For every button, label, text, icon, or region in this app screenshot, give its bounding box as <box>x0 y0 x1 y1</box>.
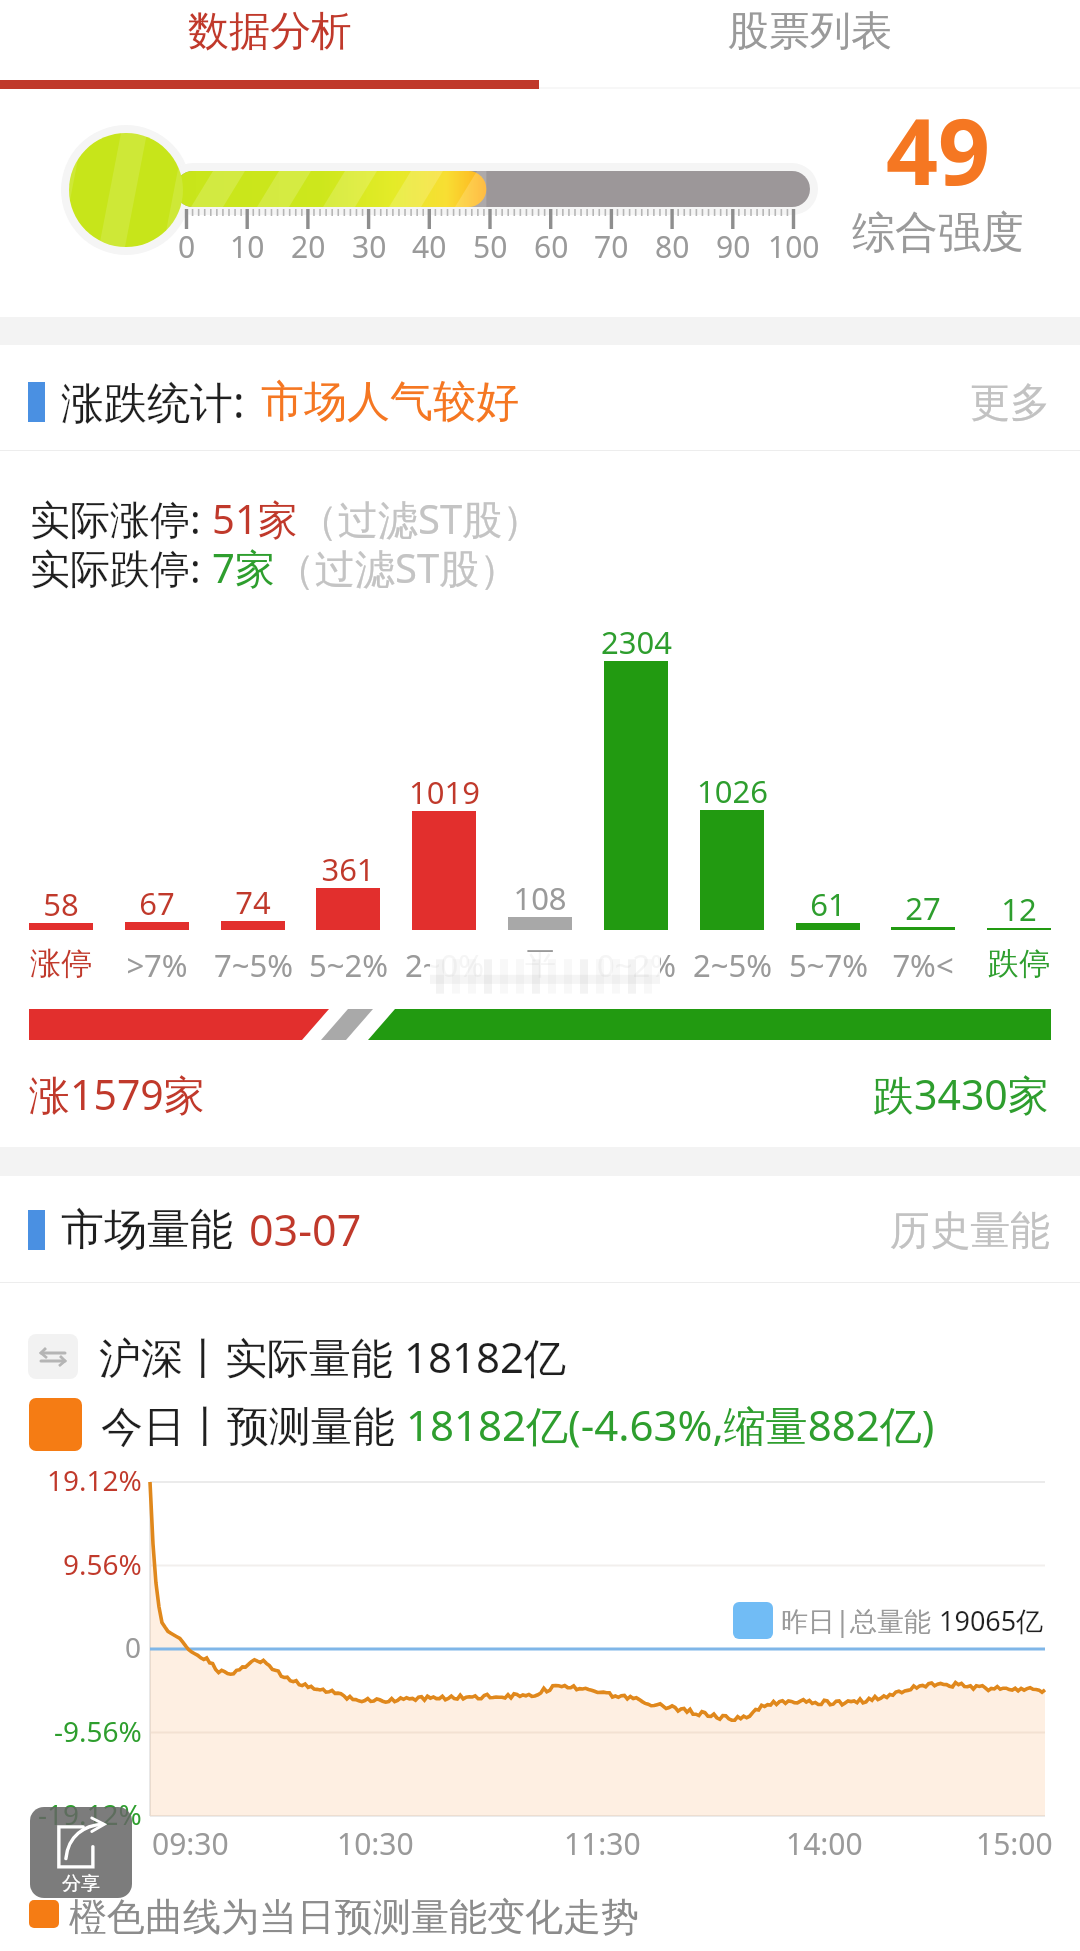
staticText: （过滤ST股） <box>275 540 520 595</box>
staticText: 61 <box>810 883 846 925</box>
staticText: 90 <box>716 226 751 267</box>
staticText: 分享 <box>62 1872 100 1896</box>
staticText: 1019 <box>409 771 480 813</box>
staticText: 50 <box>473 226 508 267</box>
staticText: 涨停 <box>30 944 92 983</box>
staticText: 7~5% <box>214 944 293 986</box>
staticText: 361 <box>321 848 375 890</box>
staticText: 平 <box>525 944 556 983</box>
staticText: 市场人气较好 <box>261 375 519 429</box>
staticText: 14:00 <box>786 1823 863 1864</box>
button[interactable]: 涨跌统计: <box>0 349 1080 454</box>
staticText: 70 <box>594 226 629 267</box>
staticText: 更多 <box>970 377 1050 427</box>
staticText: 1026 <box>697 770 768 812</box>
staticText: 108 <box>513 877 567 919</box>
staticText: 10 <box>230 226 265 267</box>
staticText: 60 <box>534 226 569 267</box>
staticText: 67 <box>139 882 175 924</box>
staticText: 74 <box>235 881 271 923</box>
staticText: 80 <box>655 226 690 267</box>
staticText: 18182亿(-4.63%,缩量882亿) <box>406 1396 935 1453</box>
staticText: 今日丨预测量能 <box>101 1396 406 1453</box>
staticText: 0~2% <box>597 944 676 986</box>
staticText: 跌3430家 <box>873 1066 1049 1122</box>
staticText: 40 <box>412 226 447 267</box>
staticText: 跌停 <box>988 944 1050 983</box>
staticText: 2~0% <box>405 944 484 986</box>
staticText: 5~2% <box>309 944 388 986</box>
staticText: 9.56% <box>63 1545 142 1583</box>
staticText: 58 <box>43 883 79 925</box>
button[interactable]: 数据分析 <box>0 0 540 81</box>
staticText: 7%< <box>892 944 954 986</box>
staticText: -19.12% <box>38 1795 142 1833</box>
staticText: 股票列表 <box>728 6 892 58</box>
staticText: 0 <box>125 1628 142 1666</box>
staticText: 2304 <box>601 621 672 663</box>
staticText: 涨1579家 <box>29 1066 205 1122</box>
staticText: 30 <box>352 226 387 267</box>
staticText: 12 <box>1001 888 1037 930</box>
staticText: 涨跌统计: <box>61 372 245 431</box>
button[interactable]: 股票列表 <box>540 0 1080 81</box>
staticText: 19.12% <box>47 1461 142 1499</box>
staticText: 昨日|总量能 <box>781 1602 931 1639</box>
staticText: 51家 <box>212 491 298 546</box>
staticText: 100 <box>768 226 820 267</box>
button[interactable]: 市场量能 <box>0 1177 1080 1282</box>
staticText: 7家 <box>212 540 275 595</box>
staticText: 市场量能 <box>61 1203 233 1257</box>
button[interactable]: 分享 <box>30 1807 132 1898</box>
staticText: >7% <box>126 944 188 986</box>
staticText: 20 <box>291 226 326 267</box>
staticText: （过滤ST股） <box>298 491 543 546</box>
staticText: 5~7% <box>789 944 868 986</box>
staticText: 实际跌停: <box>30 540 212 595</box>
staticText: 历史量能 <box>890 1205 1050 1255</box>
staticText: 11:30 <box>564 1823 641 1864</box>
staticText: 数据分析 <box>188 6 352 58</box>
staticText: 综合强度 <box>852 206 1024 260</box>
staticText: 沪深丨实际量能 18182亿 <box>99 1328 567 1385</box>
staticText: 15:00 <box>976 1823 1053 1864</box>
staticText: 实际涨停: <box>30 491 212 546</box>
staticText: -9.56% <box>54 1712 142 1750</box>
staticText: 19065亿 <box>939 1602 1044 1639</box>
staticText: 2~5% <box>693 944 772 986</box>
staticText: 橙色曲线为当日预测量能变化走势 <box>69 1893 639 1941</box>
staticText: 10:30 <box>337 1823 414 1864</box>
staticText: 09:30 <box>152 1823 229 1864</box>
staticText: 03-07 <box>249 1200 362 1259</box>
staticText: 49 <box>886 88 991 212</box>
staticText: 0 <box>178 226 196 267</box>
staticText: 27 <box>905 887 941 929</box>
